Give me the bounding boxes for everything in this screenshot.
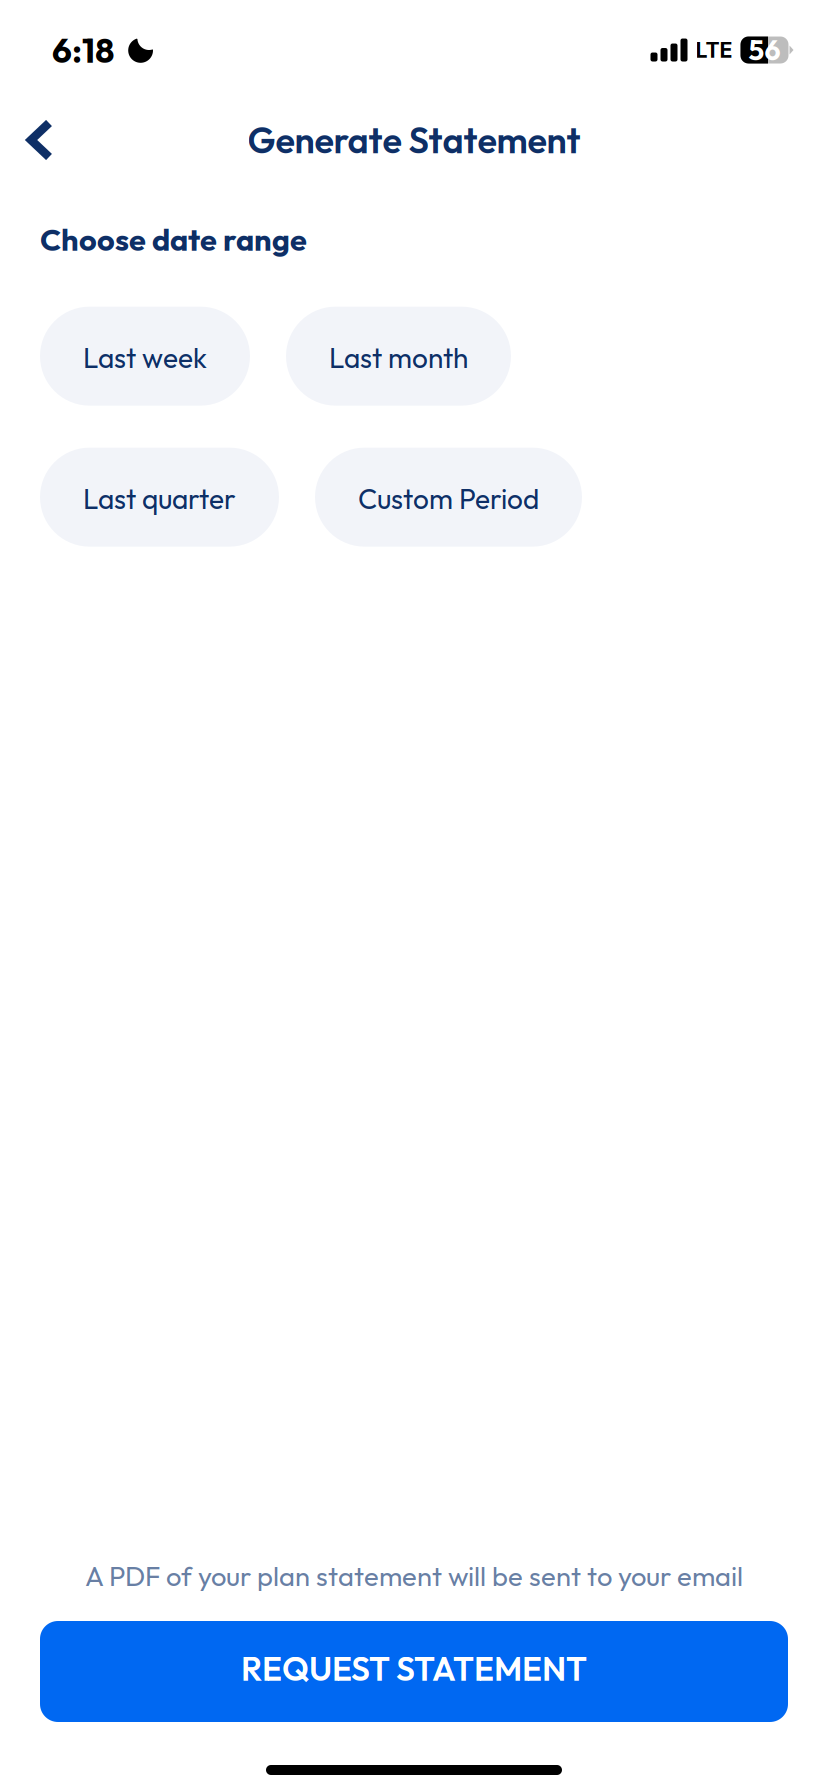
button[interactable]: REQUEST STATEMENT bbox=[40, 1621, 788, 1722]
staticText: Choose date range bbox=[40, 220, 307, 259]
staticText: REQUEST STATEMENT bbox=[241, 1647, 587, 1689]
button[interactable]: Last month bbox=[286, 307, 511, 406]
button[interactable]: Last week bbox=[40, 307, 250, 406]
button[interactable]: Last quarter bbox=[40, 448, 279, 547]
button[interactable]: Custom Period bbox=[315, 448, 582, 547]
staticText: Last quarter bbox=[83, 481, 236, 516]
staticText: Generate Statement bbox=[247, 117, 580, 163]
staticText: Custom Period bbox=[358, 481, 539, 516]
button[interactable]: Back bbox=[0, 101, 53, 179]
staticText: Last week bbox=[83, 340, 207, 375]
staticText: Last month bbox=[329, 340, 468, 375]
staticText: LTE bbox=[695, 37, 732, 63]
staticText: A PDF of your plan statement will be sen… bbox=[85, 1559, 743, 1593]
staticText: 56 bbox=[748, 32, 780, 68]
staticText: 6:18 bbox=[52, 28, 114, 72]
